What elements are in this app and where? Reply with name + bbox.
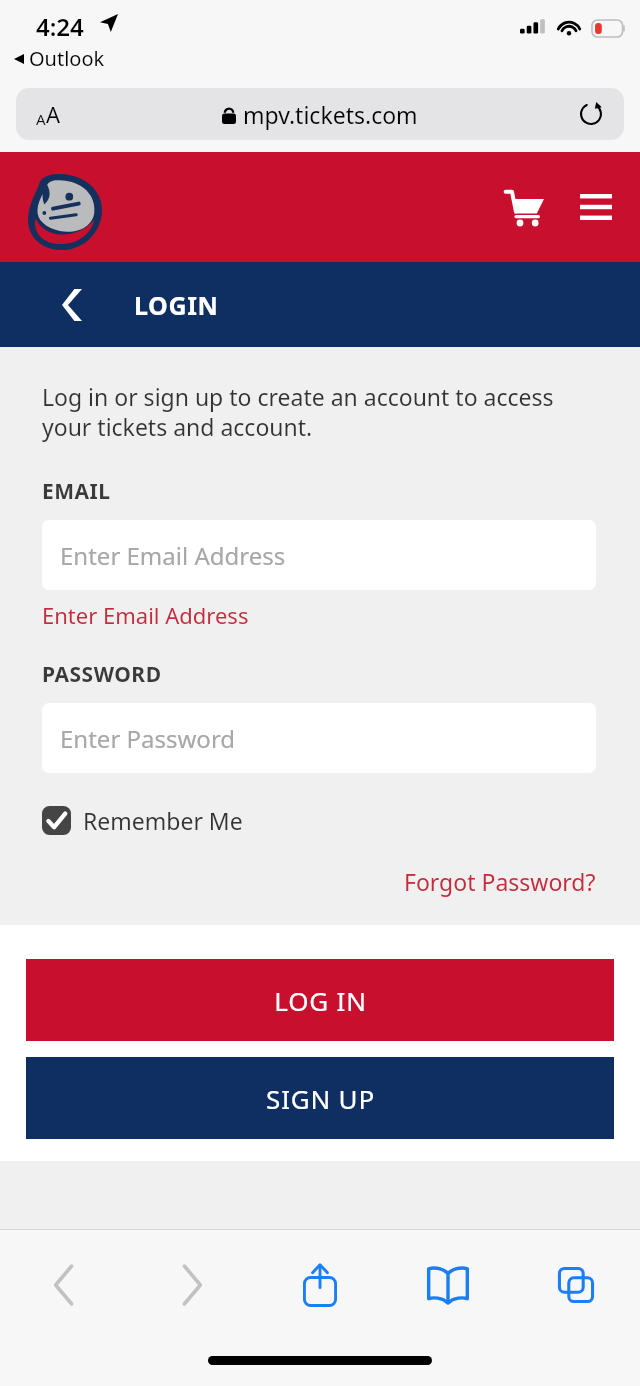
button[interactable]: Enter Password: [42, 703, 596, 773]
staticText: Remember Me: [83, 805, 243, 836]
button[interactable]: Tabs: [512, 1230, 640, 1340]
staticText: LOGIN: [134, 288, 219, 322]
staticText: EMAIL: [42, 477, 111, 506]
staticText: Outlook: [29, 45, 105, 72]
staticText: Enter Email Address: [42, 600, 249, 630]
button[interactable]: Bookmarks: [384, 1230, 512, 1340]
button[interactable]: LOG IN: [26, 959, 614, 1041]
staticText: LOG IN: [274, 983, 367, 1018]
button[interactable]: A: [16, 88, 624, 140]
button[interactable]: Menu: [572, 183, 620, 231]
button[interactable]: Cart: [498, 181, 550, 233]
button[interactable]: Remember Me: [42, 805, 243, 836]
staticText: SIGN UP: [266, 1081, 375, 1116]
button[interactable]: Forgot Password?: [404, 866, 596, 897]
button[interactable]: SIGN UP: [26, 1057, 614, 1139]
button[interactable]: Back: [50, 283, 94, 327]
staticText: PASSWORD: [42, 660, 162, 689]
staticText: Enter Email Address: [60, 539, 286, 572]
staticText: 4:24: [36, 10, 84, 43]
button[interactable]: Enter Email Address: [42, 520, 596, 590]
staticText: mpv.tickets.com: [243, 99, 418, 130]
staticText: A: [46, 99, 61, 129]
staticText: Enter Password: [60, 722, 236, 755]
button[interactable]: Reload: [574, 97, 608, 131]
staticText: A: [36, 109, 46, 129]
staticText: Log in or sign up to create an account t…: [42, 381, 596, 443]
button[interactable]: Share: [256, 1230, 384, 1340]
button[interactable]: [22, 170, 108, 256]
button[interactable]: Forward: [128, 1230, 256, 1340]
button[interactable]: Back: [0, 1230, 128, 1340]
